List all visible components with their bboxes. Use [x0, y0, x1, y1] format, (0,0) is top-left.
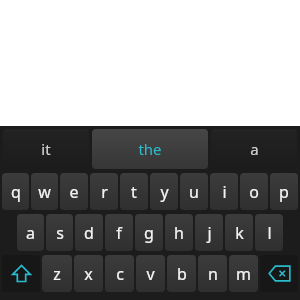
staticText: t	[131, 181, 137, 203]
staticText: q	[11, 181, 21, 203]
staticText: w	[38, 181, 51, 203]
staticText: d	[84, 222, 94, 244]
staticText: i	[222, 181, 227, 203]
button[interactable]: r	[90, 173, 118, 210]
button[interactable]: l	[255, 214, 283, 251]
button[interactable]: k	[225, 214, 253, 251]
staticText: h	[174, 222, 184, 244]
button[interactable]: z	[42, 255, 72, 292]
staticText: f	[116, 222, 122, 244]
staticText: m	[236, 263, 251, 285]
button[interactable]: q	[2, 173, 29, 210]
button[interactable]: w	[31, 173, 58, 210]
staticText: n	[208, 263, 218, 285]
button[interactable]: n	[198, 255, 227, 292]
staticText: l	[267, 222, 272, 244]
staticText: u	[189, 181, 199, 203]
staticText: c	[116, 263, 124, 285]
staticText: a	[26, 222, 35, 244]
button[interactable]: d	[75, 214, 103, 251]
staticText: e	[69, 181, 79, 203]
button[interactable]: b	[167, 255, 196, 292]
button[interactable]: Shift	[2, 255, 40, 292]
button[interactable]: Backspace	[260, 255, 298, 292]
button[interactable]: e	[60, 173, 88, 210]
staticText: x	[84, 263, 93, 285]
button[interactable]: t	[120, 173, 148, 210]
staticText: a	[250, 139, 259, 159]
button[interactable]: s	[46, 214, 73, 251]
staticText: z	[53, 263, 61, 285]
button[interactable]: h	[165, 214, 193, 251]
button[interactable]: g	[135, 214, 163, 251]
staticText: j	[207, 222, 212, 244]
button[interactable]: m	[229, 255, 258, 292]
button[interactable]: c	[105, 255, 134, 292]
staticText: y	[160, 181, 169, 203]
button[interactable]: p	[270, 173, 298, 210]
staticText: r	[101, 181, 108, 203]
button[interactable]: o	[240, 173, 268, 210]
button[interactable]: i	[210, 173, 238, 210]
staticText: g	[144, 222, 154, 244]
staticText: v	[146, 263, 155, 285]
button[interactable]: y	[150, 173, 178, 210]
button[interactable]: x	[74, 255, 103, 292]
staticText: it	[41, 139, 51, 159]
staticText: the	[138, 139, 162, 159]
button[interactable]: it	[3, 129, 89, 169]
staticText: b	[177, 263, 187, 285]
button[interactable]: j	[195, 214, 223, 251]
button[interactable]: f	[105, 214, 133, 251]
staticText: o	[249, 181, 259, 203]
staticText: s	[56, 222, 64, 244]
button[interactable]: the	[92, 129, 208, 169]
button[interactable]: a	[17, 214, 44, 251]
staticText: p	[279, 181, 289, 203]
button[interactable]: v	[136, 255, 165, 292]
button[interactable]: u	[180, 173, 208, 210]
staticText: k	[235, 222, 244, 244]
button[interactable]: a	[211, 129, 297, 169]
